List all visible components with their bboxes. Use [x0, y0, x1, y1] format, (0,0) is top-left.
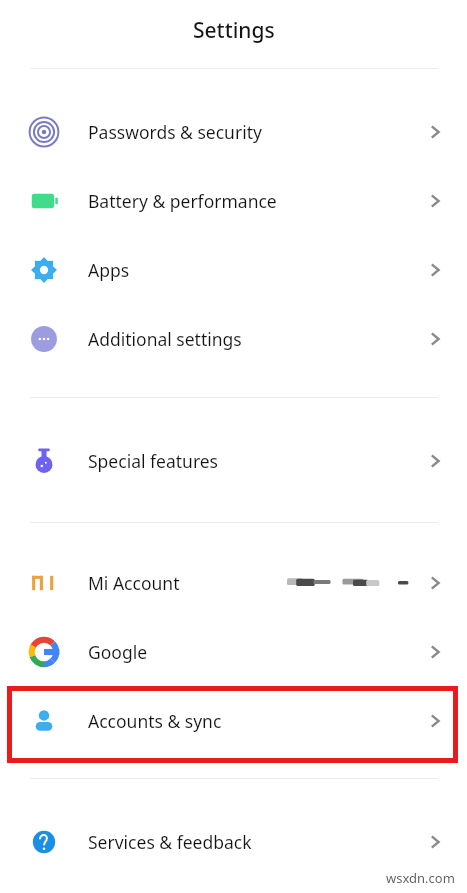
- staticText: Accounts & sync: [88, 709, 222, 733]
- staticText: Passwords & security: [88, 120, 262, 144]
- staticText: Additional settings: [88, 327, 242, 351]
- button[interactable]: Battery & performance: [0, 166, 467, 235]
- staticText: Services & feedback: [88, 830, 252, 854]
- staticText: Mi Account: [88, 571, 180, 595]
- button[interactable]: Passwords & security: [0, 97, 467, 166]
- staticText: Battery & performance: [88, 189, 277, 213]
- button[interactable]: Services & feedback: [0, 807, 467, 876]
- staticText: Google: [88, 640, 148, 664]
- button[interactable]: Mi Account: [0, 548, 467, 617]
- staticText: wsxdn.com: [386, 869, 455, 887]
- staticText: Settings: [193, 16, 275, 45]
- button[interactable]: Apps: [0, 235, 467, 304]
- staticText: Apps: [88, 258, 130, 282]
- button[interactable]: Special features: [0, 426, 467, 495]
- button[interactable]: Additional settings: [0, 304, 467, 373]
- staticText: Special features: [88, 449, 219, 473]
- button[interactable]: Accounts & sync: [0, 686, 467, 755]
- button[interactable]: Google: [0, 617, 467, 686]
